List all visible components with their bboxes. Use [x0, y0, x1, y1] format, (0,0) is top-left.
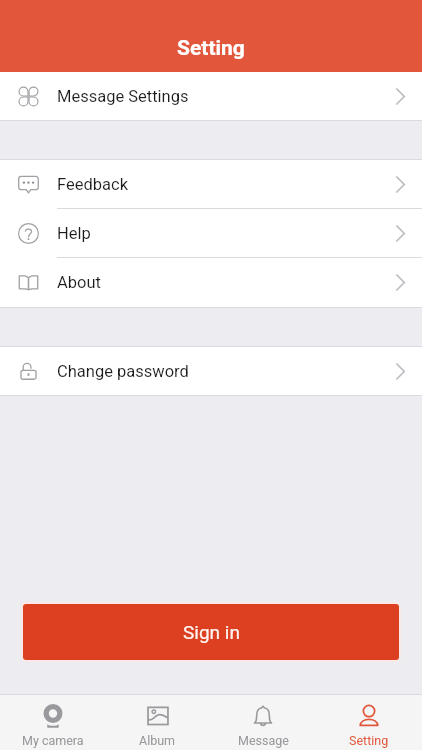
button[interactable]: Message Settings — [0, 72, 422, 120]
button[interactable]: About — [0, 258, 422, 307]
staticText: Message Settings — [57, 87, 189, 106]
button[interactable]: Album — [105, 695, 210, 750]
button[interactable]: My camera — [0, 695, 105, 750]
staticText: Help — [57, 224, 91, 243]
staticText: About — [57, 273, 101, 292]
button[interactable]: Change password — [0, 347, 422, 395]
staticText: Feedback — [57, 175, 128, 194]
staticText: Sign in — [183, 621, 240, 643]
staticText: My camera — [22, 733, 84, 748]
button[interactable]: Help — [0, 209, 422, 258]
button[interactable]: Message — [210, 695, 316, 750]
staticText: Change password — [57, 362, 189, 381]
staticText: Message — [238, 733, 289, 748]
staticText: Setting — [177, 36, 245, 61]
staticText: Album — [139, 733, 176, 748]
button[interactable]: Feedback — [0, 160, 422, 209]
button[interactable]: Setting — [316, 695, 422, 750]
staticText: Setting — [349, 733, 389, 748]
button[interactable]: Sign in — [23, 604, 399, 660]
